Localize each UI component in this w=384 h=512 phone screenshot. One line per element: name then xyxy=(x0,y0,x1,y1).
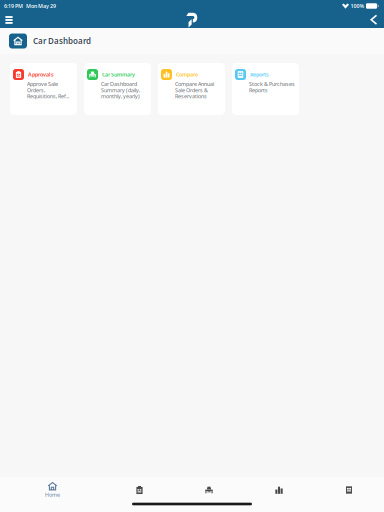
staticText: Compare Annual Sale Orders & Reservation… xyxy=(175,80,214,100)
staticText: Stock & Purchases Reports xyxy=(249,80,295,94)
staticText: Approvals xyxy=(28,71,54,78)
staticText: Mon May 29 xyxy=(23,2,56,10)
staticText: Reports xyxy=(250,71,269,78)
staticText: Compare xyxy=(176,71,198,78)
staticText: 6:19 PM xyxy=(4,2,23,10)
button[interactable]: Back xyxy=(364,12,384,28)
button[interactable]: Car Summary xyxy=(174,479,244,501)
button[interactable]: Home xyxy=(0,479,105,501)
staticText: Car Summary xyxy=(102,71,135,78)
button[interactable]: Reports xyxy=(314,479,384,501)
button[interactable]: Compare xyxy=(158,63,225,115)
button[interactable]: Reports xyxy=(232,63,299,115)
button[interactable]: Approvals xyxy=(10,63,77,115)
button[interactable]: Car Summary xyxy=(84,63,151,115)
staticText: Approve Sale Orders, Requisitions, Ref..… xyxy=(27,80,69,100)
staticText: Home xyxy=(45,491,60,498)
button[interactable]: Home xyxy=(9,33,27,48)
staticText: Car Dashboard xyxy=(33,36,91,46)
staticText: 100% xyxy=(350,2,364,10)
button[interactable]: Approvals xyxy=(105,479,174,501)
staticText: Car Dashboard Summary (daily, monthly, y… xyxy=(101,80,140,100)
button[interactable]: Compare xyxy=(244,479,314,501)
button[interactable]: Menu xyxy=(0,12,18,28)
